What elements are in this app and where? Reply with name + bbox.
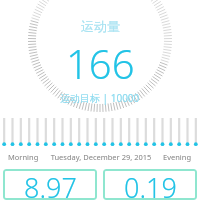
button[interactable]: Activity ring, 166 steps of 10000 goal [0, 0, 200, 116]
staticText: 运动量 [81, 18, 120, 34]
staticText: Evening [163, 152, 192, 162]
staticText: 0.19 [124, 169, 177, 200]
staticText: Morning [8, 152, 39, 162]
button[interactable]: 8.97 [3, 169, 97, 200]
button[interactable]: 0.19 [103, 169, 197, 200]
staticText: Tuesday, December 29, 2015 [39, 152, 163, 162]
staticText: 运动目标 | 10000 [60, 91, 140, 105]
staticText: 8.97 [24, 169, 77, 200]
button[interactable]: Hourly activity chart [0, 116, 200, 150]
staticText: 166 [66, 36, 135, 90]
